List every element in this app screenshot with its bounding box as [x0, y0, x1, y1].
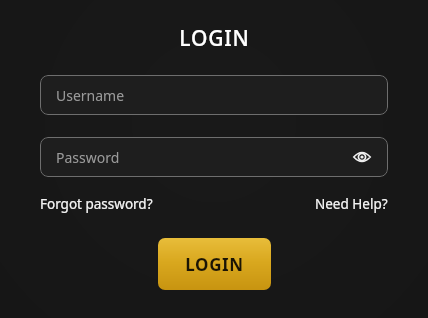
staticText: LOGIN: [185, 253, 244, 276]
staticText: Need Help?: [315, 195, 388, 213]
button[interactable]: LOGIN: [158, 238, 271, 290]
button[interactable]: Show password: [350, 145, 374, 169]
button[interactable]: Username: [40, 75, 388, 115]
staticText: LOGIN: [179, 24, 250, 53]
button[interactable]: Password: [40, 137, 388, 177]
button[interactable]: Forgot password?: [40, 195, 153, 213]
button[interactable]: Need Help?: [315, 195, 388, 213]
staticText: Forgot password?: [40, 195, 153, 213]
staticText: Username: [56, 86, 125, 105]
staticText: Password: [56, 148, 120, 167]
